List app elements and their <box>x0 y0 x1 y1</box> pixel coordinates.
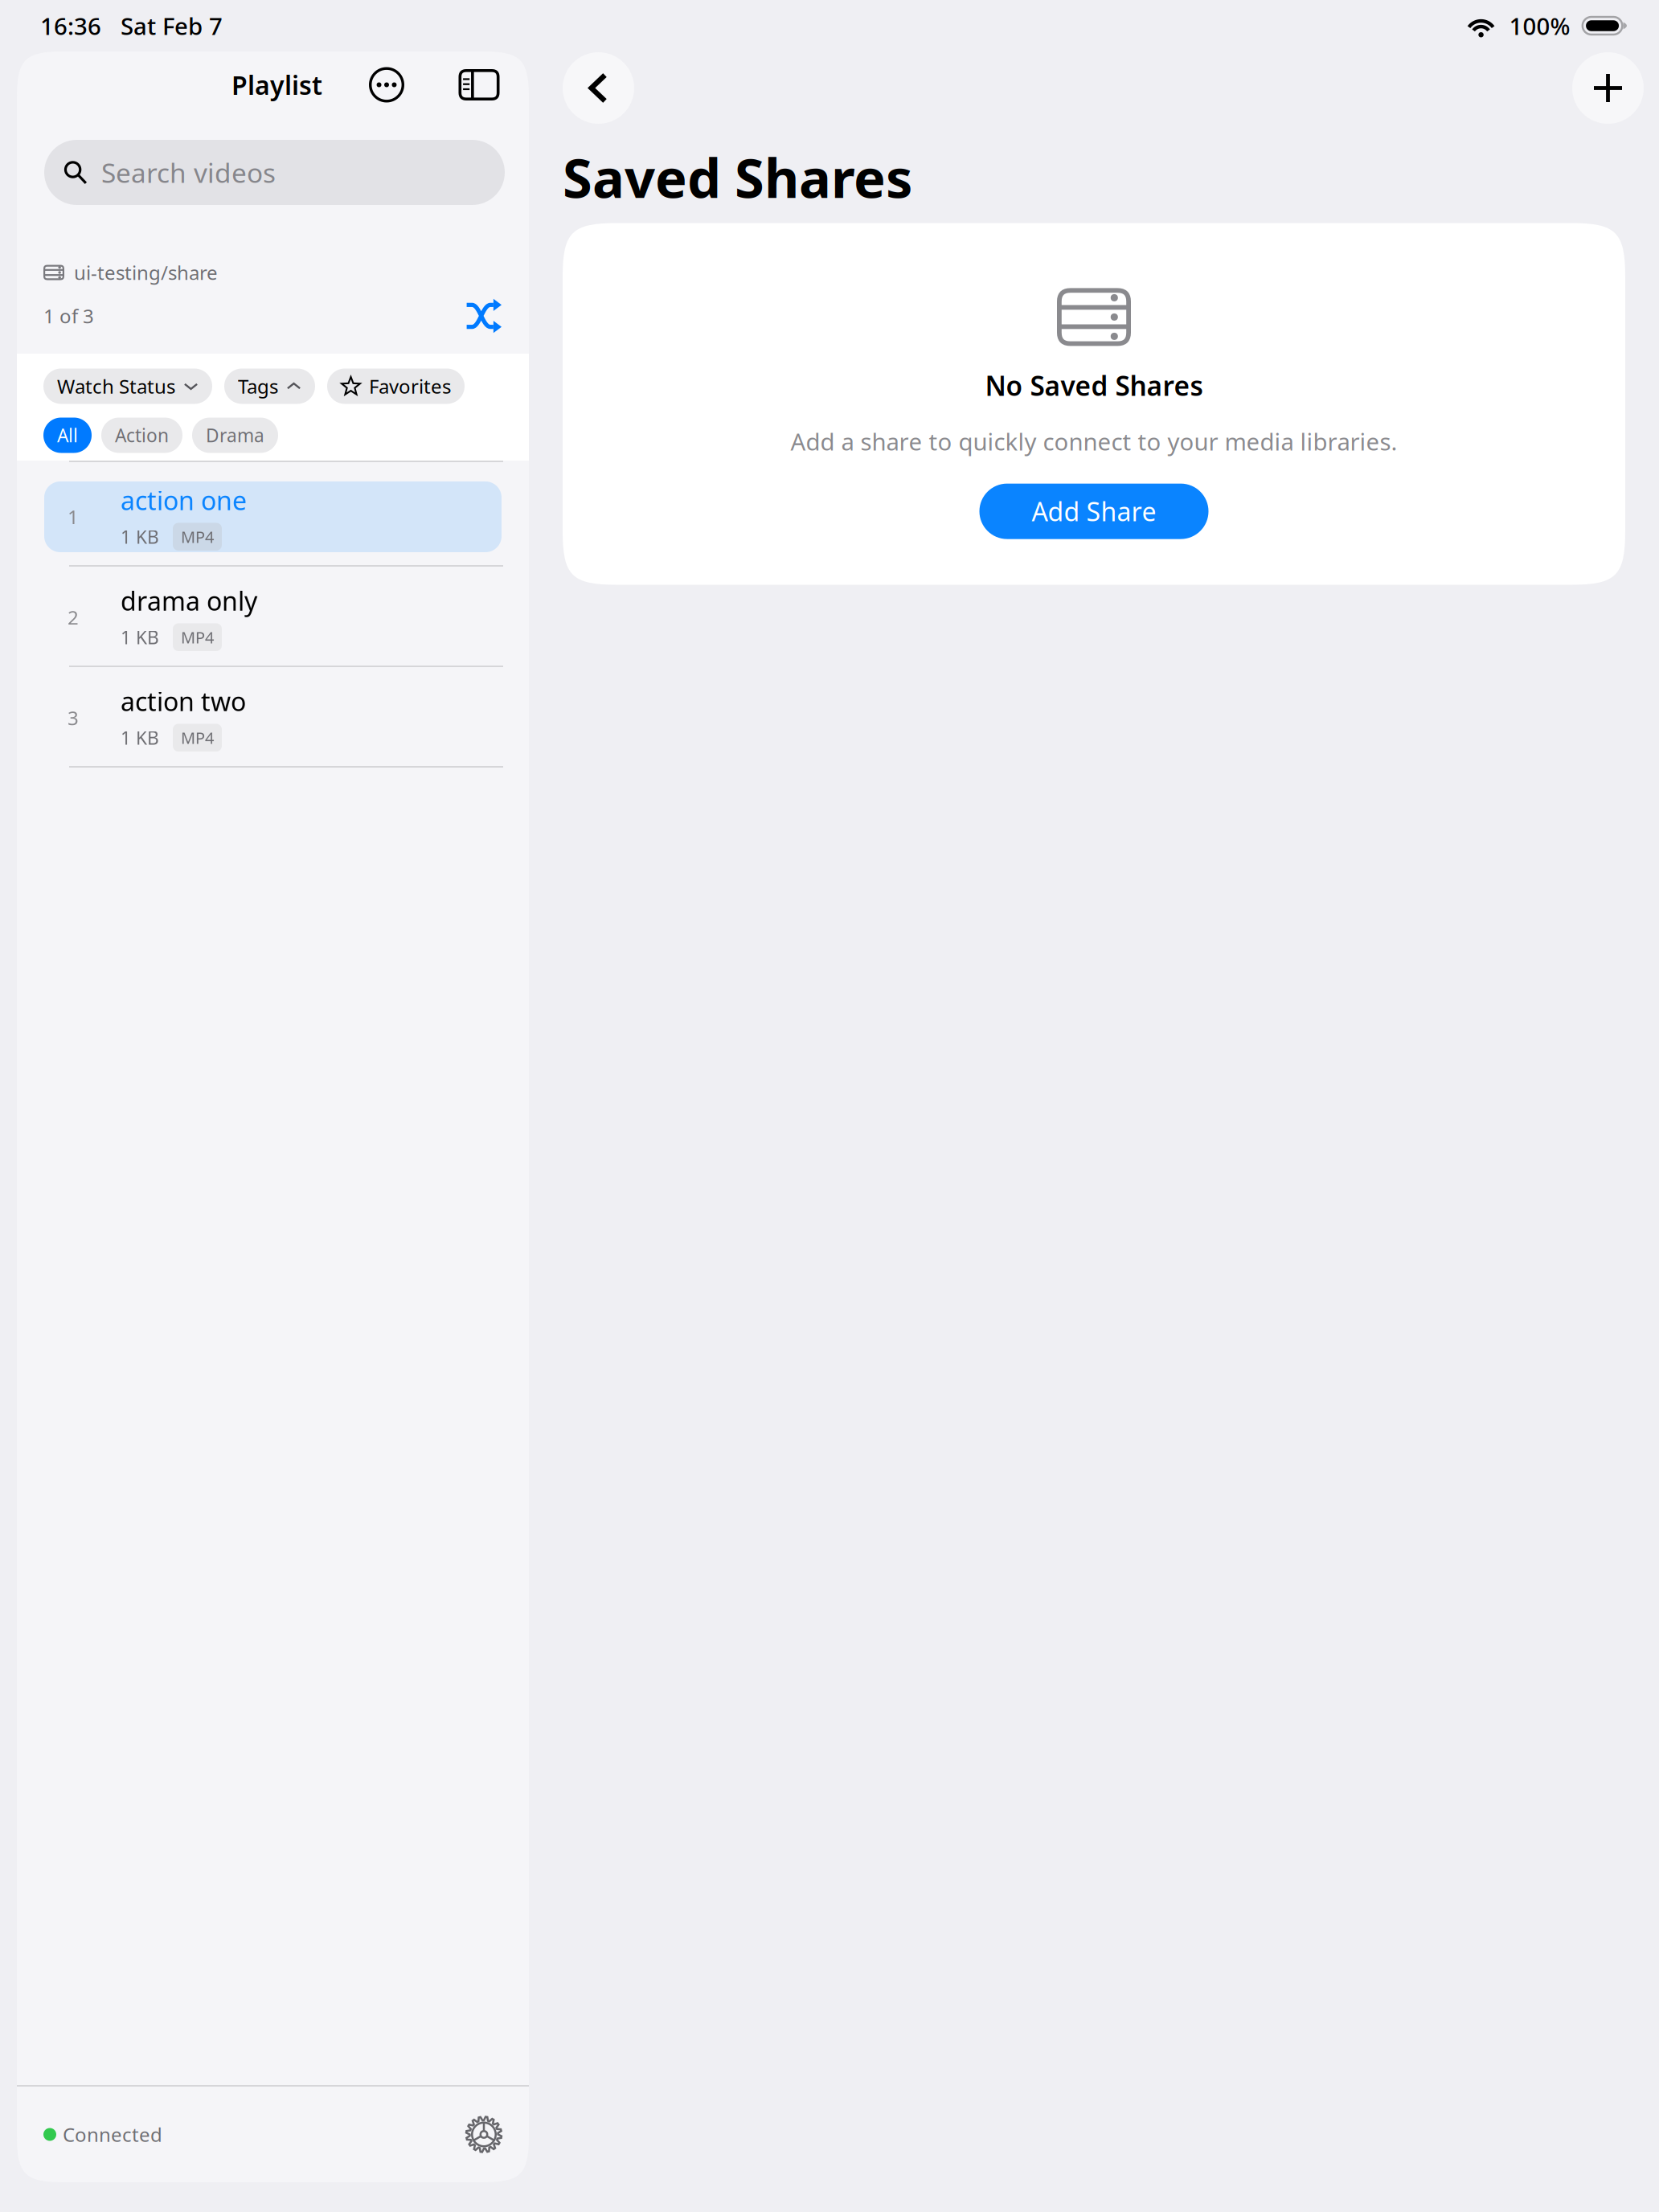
staticText: MP4 <box>181 627 214 648</box>
button[interactable]: 3 <box>17 682 529 783</box>
button[interactable]: All <box>43 418 92 453</box>
staticText: drama only <box>121 584 257 618</box>
button[interactable]: Hide sidebar <box>456 61 502 108</box>
staticText: Connected <box>63 2122 162 2147</box>
button[interactable]: Shuffle <box>465 297 502 334</box>
button[interactable]: 2 <box>17 582 529 682</box>
button[interactable]: Add Share <box>979 484 1208 539</box>
staticText: Sat Feb 7 <box>121 10 223 41</box>
button[interactable]: Watch Status <box>43 369 212 404</box>
button[interactable]: 1 <box>17 481 529 582</box>
staticText: Add Share <box>1032 494 1156 528</box>
button[interactable]: Favorites <box>327 369 465 404</box>
staticText: 16:36 <box>40 10 101 41</box>
button[interactable]: Action <box>101 418 182 453</box>
button[interactable]: More options <box>363 61 410 108</box>
button[interactable]: Settings <box>462 2113 506 2156</box>
staticText: 1 of 3 <box>43 303 94 329</box>
staticText: 3 <box>68 705 79 731</box>
staticText: 100% <box>1509 10 1570 41</box>
staticText: Tags <box>238 373 278 399</box>
staticText: All <box>57 423 78 447</box>
staticText: ui-testing/share <box>74 260 218 285</box>
staticText: 1 KB <box>121 625 159 649</box>
staticText: 1 KB <box>121 726 159 750</box>
staticText: 1 KB <box>121 525 159 549</box>
button[interactable]: Search videos <box>44 140 505 205</box>
button[interactable]: Tags <box>224 369 315 404</box>
staticText: action two <box>121 684 246 718</box>
staticText: 2 <box>68 605 79 630</box>
staticText: MP4 <box>181 727 214 748</box>
staticText: Favorites <box>369 373 451 399</box>
staticText: Saved Shares <box>563 141 912 213</box>
button[interactable]: Drama <box>192 418 278 453</box>
staticText: Drama <box>206 423 264 447</box>
staticText: action one <box>121 483 247 517</box>
button[interactable]: Add share <box>1572 52 1644 124</box>
staticText: No Saved Shares <box>985 368 1203 403</box>
staticText: Watch Status <box>57 373 175 399</box>
staticText: 1 <box>68 504 79 530</box>
staticText: Action <box>115 423 169 447</box>
staticText: MP4 <box>181 526 214 547</box>
staticText: Search videos <box>101 155 276 190</box>
button[interactable]: Back <box>563 52 634 124</box>
staticText: Playlist <box>231 68 322 102</box>
staticText: Add a share to quickly connect to your m… <box>791 426 1397 457</box>
